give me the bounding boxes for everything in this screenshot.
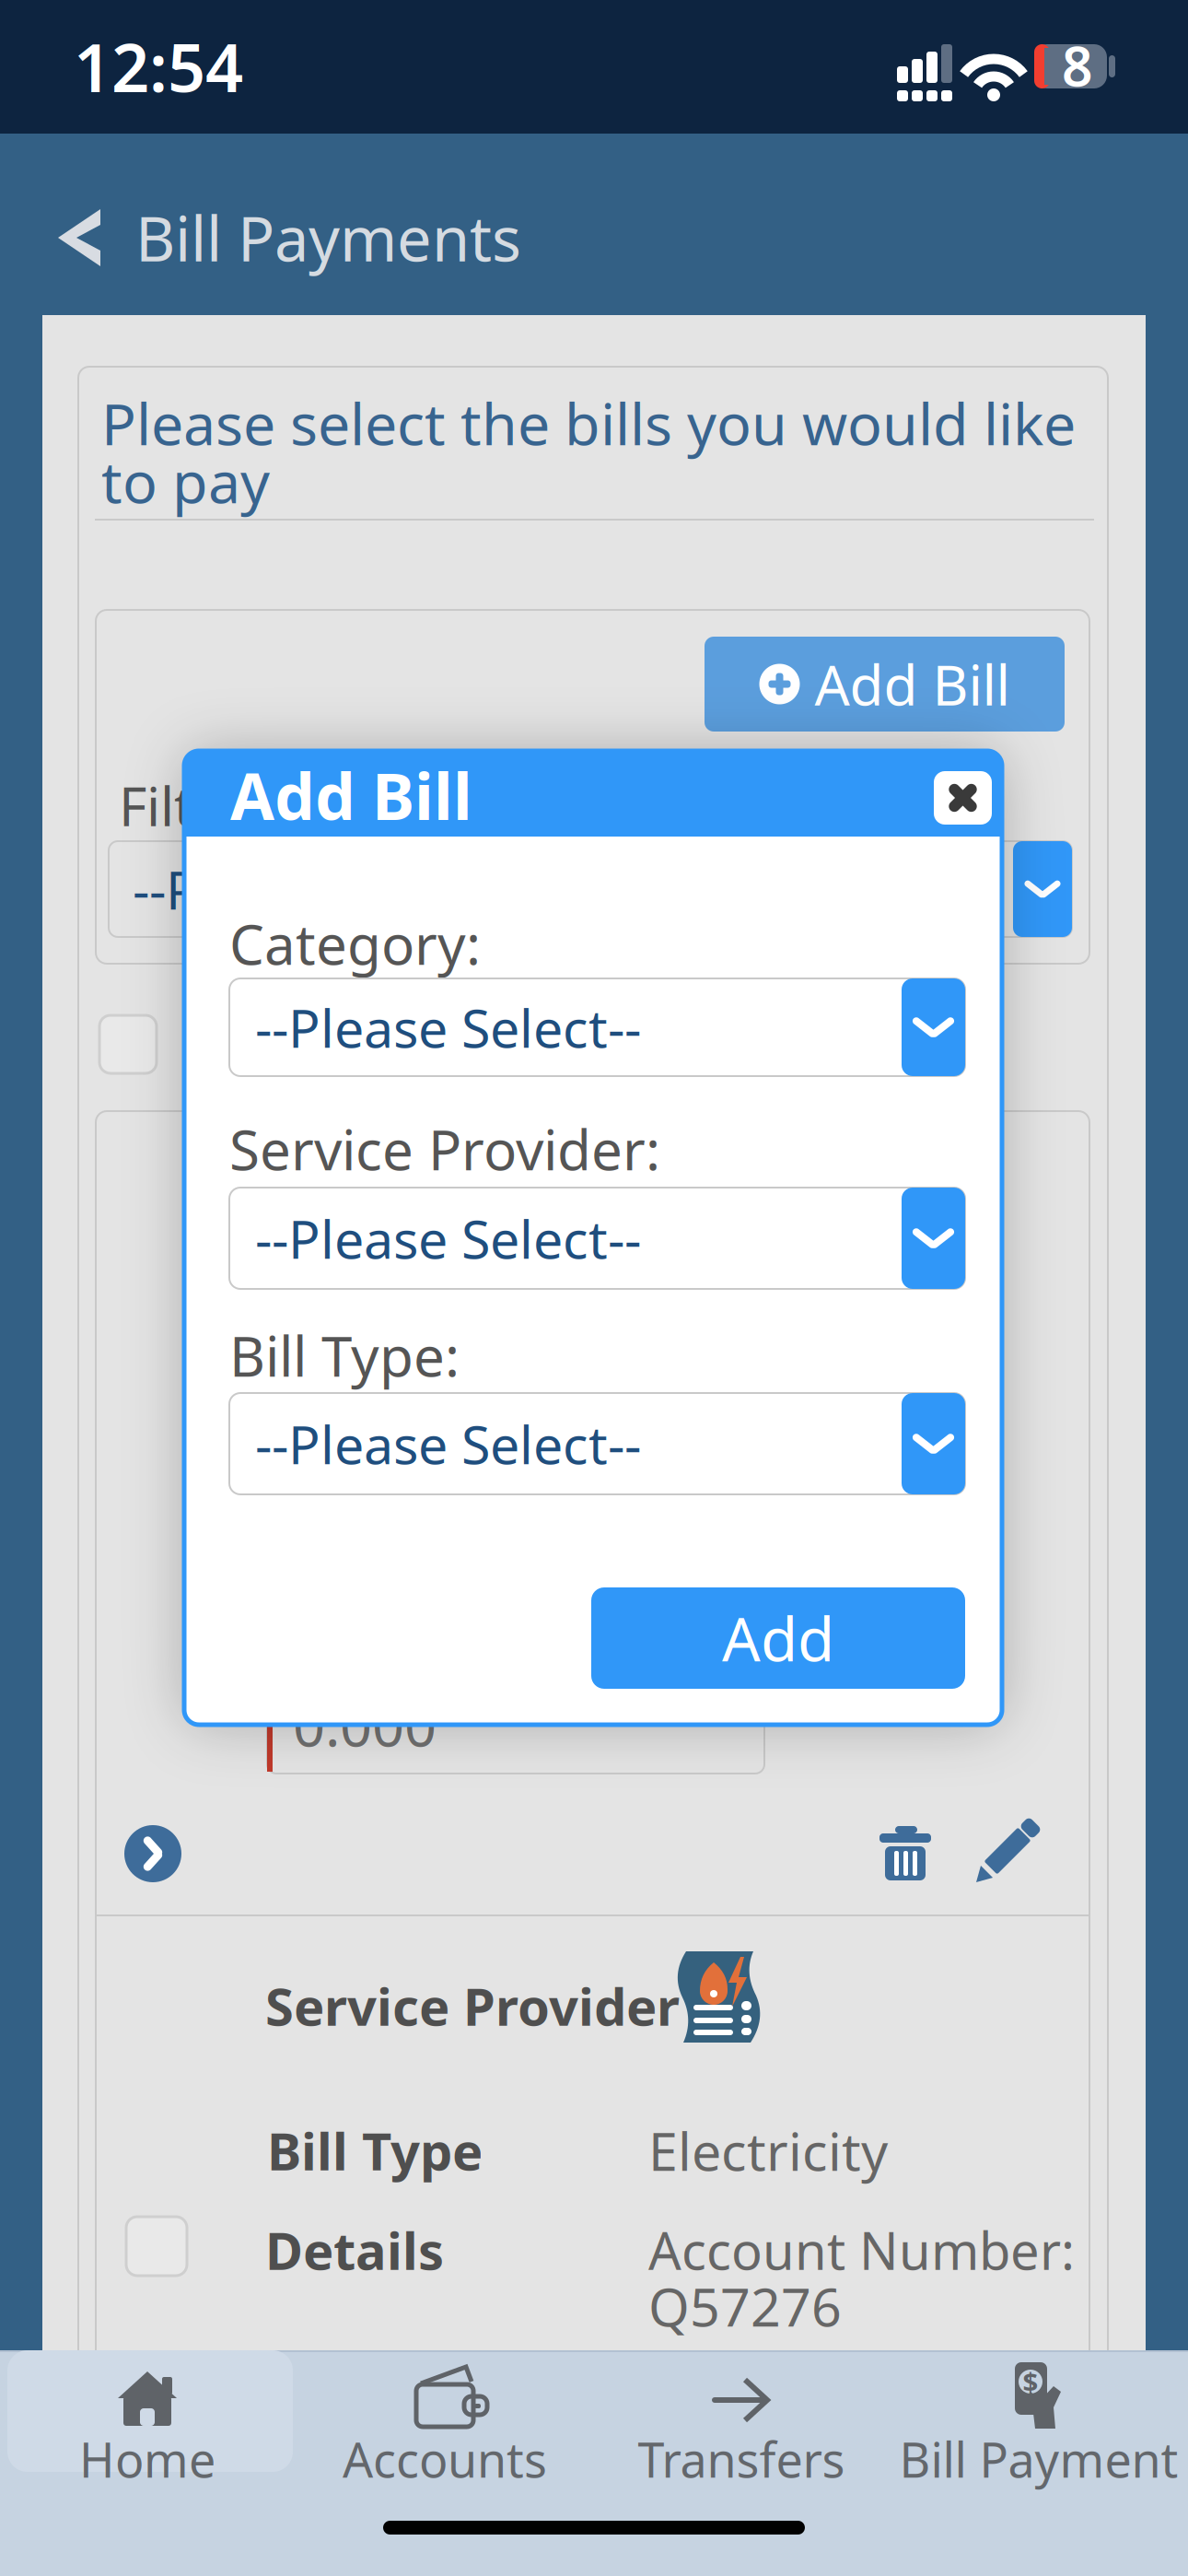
staticText: Account Number:	[648, 2216, 1075, 2284]
staticText: Add	[722, 1598, 834, 1678]
staticText: --Please Select--	[255, 992, 641, 1062]
button[interactable]: Home	[9, 2336, 285, 2483]
button[interactable]: Bill Payment	[901, 2336, 1177, 2483]
staticText: to pay	[101, 443, 270, 519]
staticText: Add Bill	[230, 753, 472, 838]
staticText: Filter By Category	[119, 769, 565, 841]
button[interactable]: Select all bills	[99, 1015, 157, 1073]
staticText: Bill Payment	[899, 2427, 1178, 2491]
staticText: 12:54	[74, 22, 243, 110]
staticText: $	[1023, 2364, 1038, 2400]
staticText: 0.000	[293, 1687, 437, 1762]
staticText: Bill Type	[267, 2116, 483, 2185]
staticText: Service Provider	[265, 1971, 680, 2040]
staticText: Details	[265, 2216, 444, 2284]
staticText: 8	[1062, 29, 1093, 101]
staticText: Bill Payments	[135, 197, 521, 278]
staticText: Home	[79, 2427, 215, 2491]
button[interactable]: Delete bill	[864, 1812, 947, 1895]
staticText: --Please Select--	[133, 854, 518, 924]
staticText: Q57276	[648, 2271, 842, 2341]
staticText: --Please Select--	[255, 1203, 641, 1273]
button[interactable]: Please Select	[229, 1393, 965, 1494]
staticText: Transfers	[638, 2427, 845, 2491]
button[interactable]: Add Bill	[705, 637, 1065, 732]
staticText: Bill Type:	[229, 1319, 460, 1392]
staticText: Add Bill	[815, 647, 1010, 721]
button[interactable]: Please Select	[229, 1188, 965, 1289]
button[interactable]: Transfers	[603, 2336, 879, 2483]
staticText: Electricity	[648, 2115, 888, 2185]
button[interactable]: Accounts	[307, 2336, 583, 2483]
staticText: Service Provider:	[229, 1112, 660, 1186]
button[interactable]: Amount	[267, 1566, 764, 1774]
button[interactable]: Edit bill	[965, 1810, 1048, 1893]
button[interactable]: Close	[934, 771, 992, 825]
staticText: Please select the bills you would like	[101, 385, 1076, 461]
button[interactable]: Expand bill	[124, 1825, 181, 1882]
staticText: Accounts	[343, 2427, 547, 2491]
button[interactable]: Select bill	[126, 2217, 187, 2276]
button[interactable]: Filter selection	[109, 841, 1072, 937]
button[interactable]: Add	[591, 1587, 965, 1689]
button[interactable]: Back	[38, 192, 121, 284]
button[interactable]: Please Select	[229, 978, 965, 1076]
staticText: --Please Select--	[255, 1409, 641, 1479]
staticText: Category:	[229, 907, 481, 980]
